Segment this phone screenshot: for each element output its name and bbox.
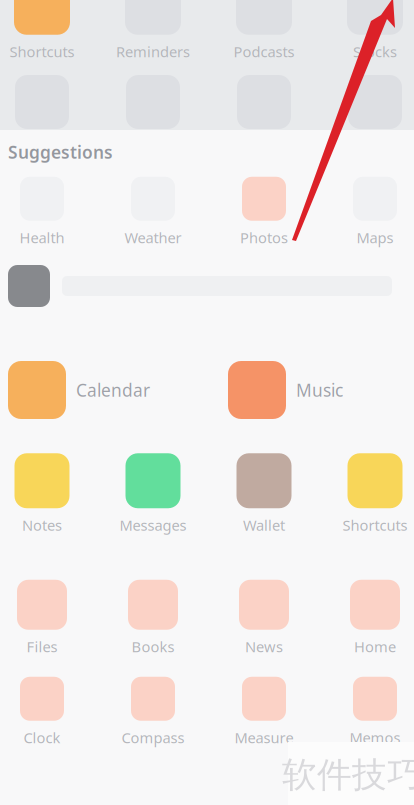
button[interactable]: Calendar — [8, 359, 188, 421]
staticText: Maps — [356, 228, 393, 247]
staticText: Books — [131, 637, 174, 656]
button[interactable]: Weather — [97, 177, 208, 247]
button[interactable]: Reminders — [97, 0, 208, 61]
staticText: Measure — [234, 728, 293, 747]
button[interactable]: Photos — [208, 177, 319, 247]
staticText: Weather — [124, 228, 181, 247]
button[interactable]: Maps — [319, 177, 414, 247]
staticText: Compass — [121, 728, 184, 747]
staticText: Shortcuts — [9, 42, 74, 61]
button[interactable]: Wallet — [208, 453, 319, 535]
staticText: Music — [296, 378, 343, 401]
button[interactable]: Memos — [319, 677, 414, 747]
staticText: Wallet — [243, 515, 285, 535]
staticText: Shortcuts — [342, 515, 407, 535]
staticText: Podcasts — [233, 42, 294, 61]
staticText: Memos — [349, 728, 400, 747]
staticText: News — [245, 637, 283, 656]
button[interactable]: Health — [0, 177, 97, 247]
staticText: Reminders — [116, 42, 190, 61]
button[interactable]: Home — [319, 580, 414, 656]
button[interactable]: Compass — [97, 677, 208, 747]
button[interactable]: Podcasts — [208, 0, 319, 61]
staticText: Clock — [23, 728, 60, 747]
button[interactable]: Clock — [0, 677, 97, 747]
staticText: Suggestions — [8, 140, 113, 163]
staticText: Home — [354, 637, 396, 656]
button[interactable]: Shortcuts — [0, 0, 97, 61]
staticText: Stocks — [353, 42, 397, 61]
staticText: 软件技巧 — [282, 754, 414, 796]
button[interactable] — [8, 264, 404, 308]
button[interactable]: Shortcuts — [319, 453, 414, 535]
button[interactable]: Messages — [97, 453, 208, 535]
button[interactable]: News — [208, 580, 319, 656]
staticText: Notes — [22, 515, 62, 535]
staticText: Files — [26, 637, 57, 656]
button[interactable]: Files — [0, 580, 97, 656]
button[interactable]: Books — [97, 580, 208, 656]
button[interactable]: Stocks — [319, 0, 414, 61]
staticText: Messages — [119, 515, 186, 535]
button[interactable]: Notes — [0, 453, 97, 535]
staticText: Calendar — [76, 378, 150, 401]
staticText: Health — [19, 228, 64, 247]
staticText: Photos — [240, 228, 288, 247]
button[interactable]: Measure — [208, 677, 319, 747]
button[interactable]: Music — [228, 359, 408, 421]
